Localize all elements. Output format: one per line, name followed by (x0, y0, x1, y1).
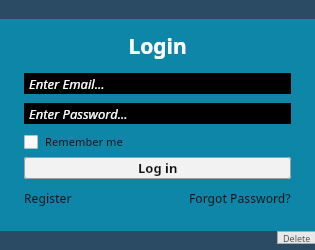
staticText: Log in (138, 159, 178, 177)
button[interactable]: Forgot Password? (189, 190, 291, 206)
staticText: Login (24, 32, 291, 61)
button[interactable]: Delete (277, 231, 315, 244)
staticText: Delete (283, 232, 311, 244)
button[interactable]: Enter Password... (24, 103, 291, 124)
button[interactable]: Register (24, 190, 72, 206)
staticText: Remember me (45, 134, 123, 149)
button[interactable]: Remember me (24, 132, 123, 151)
button[interactable]: Enter Email... (24, 73, 291, 94)
button[interactable]: Log in (24, 157, 291, 179)
staticText: Enter Email... (29, 75, 105, 93)
staticText: Enter Password... (29, 105, 128, 123)
